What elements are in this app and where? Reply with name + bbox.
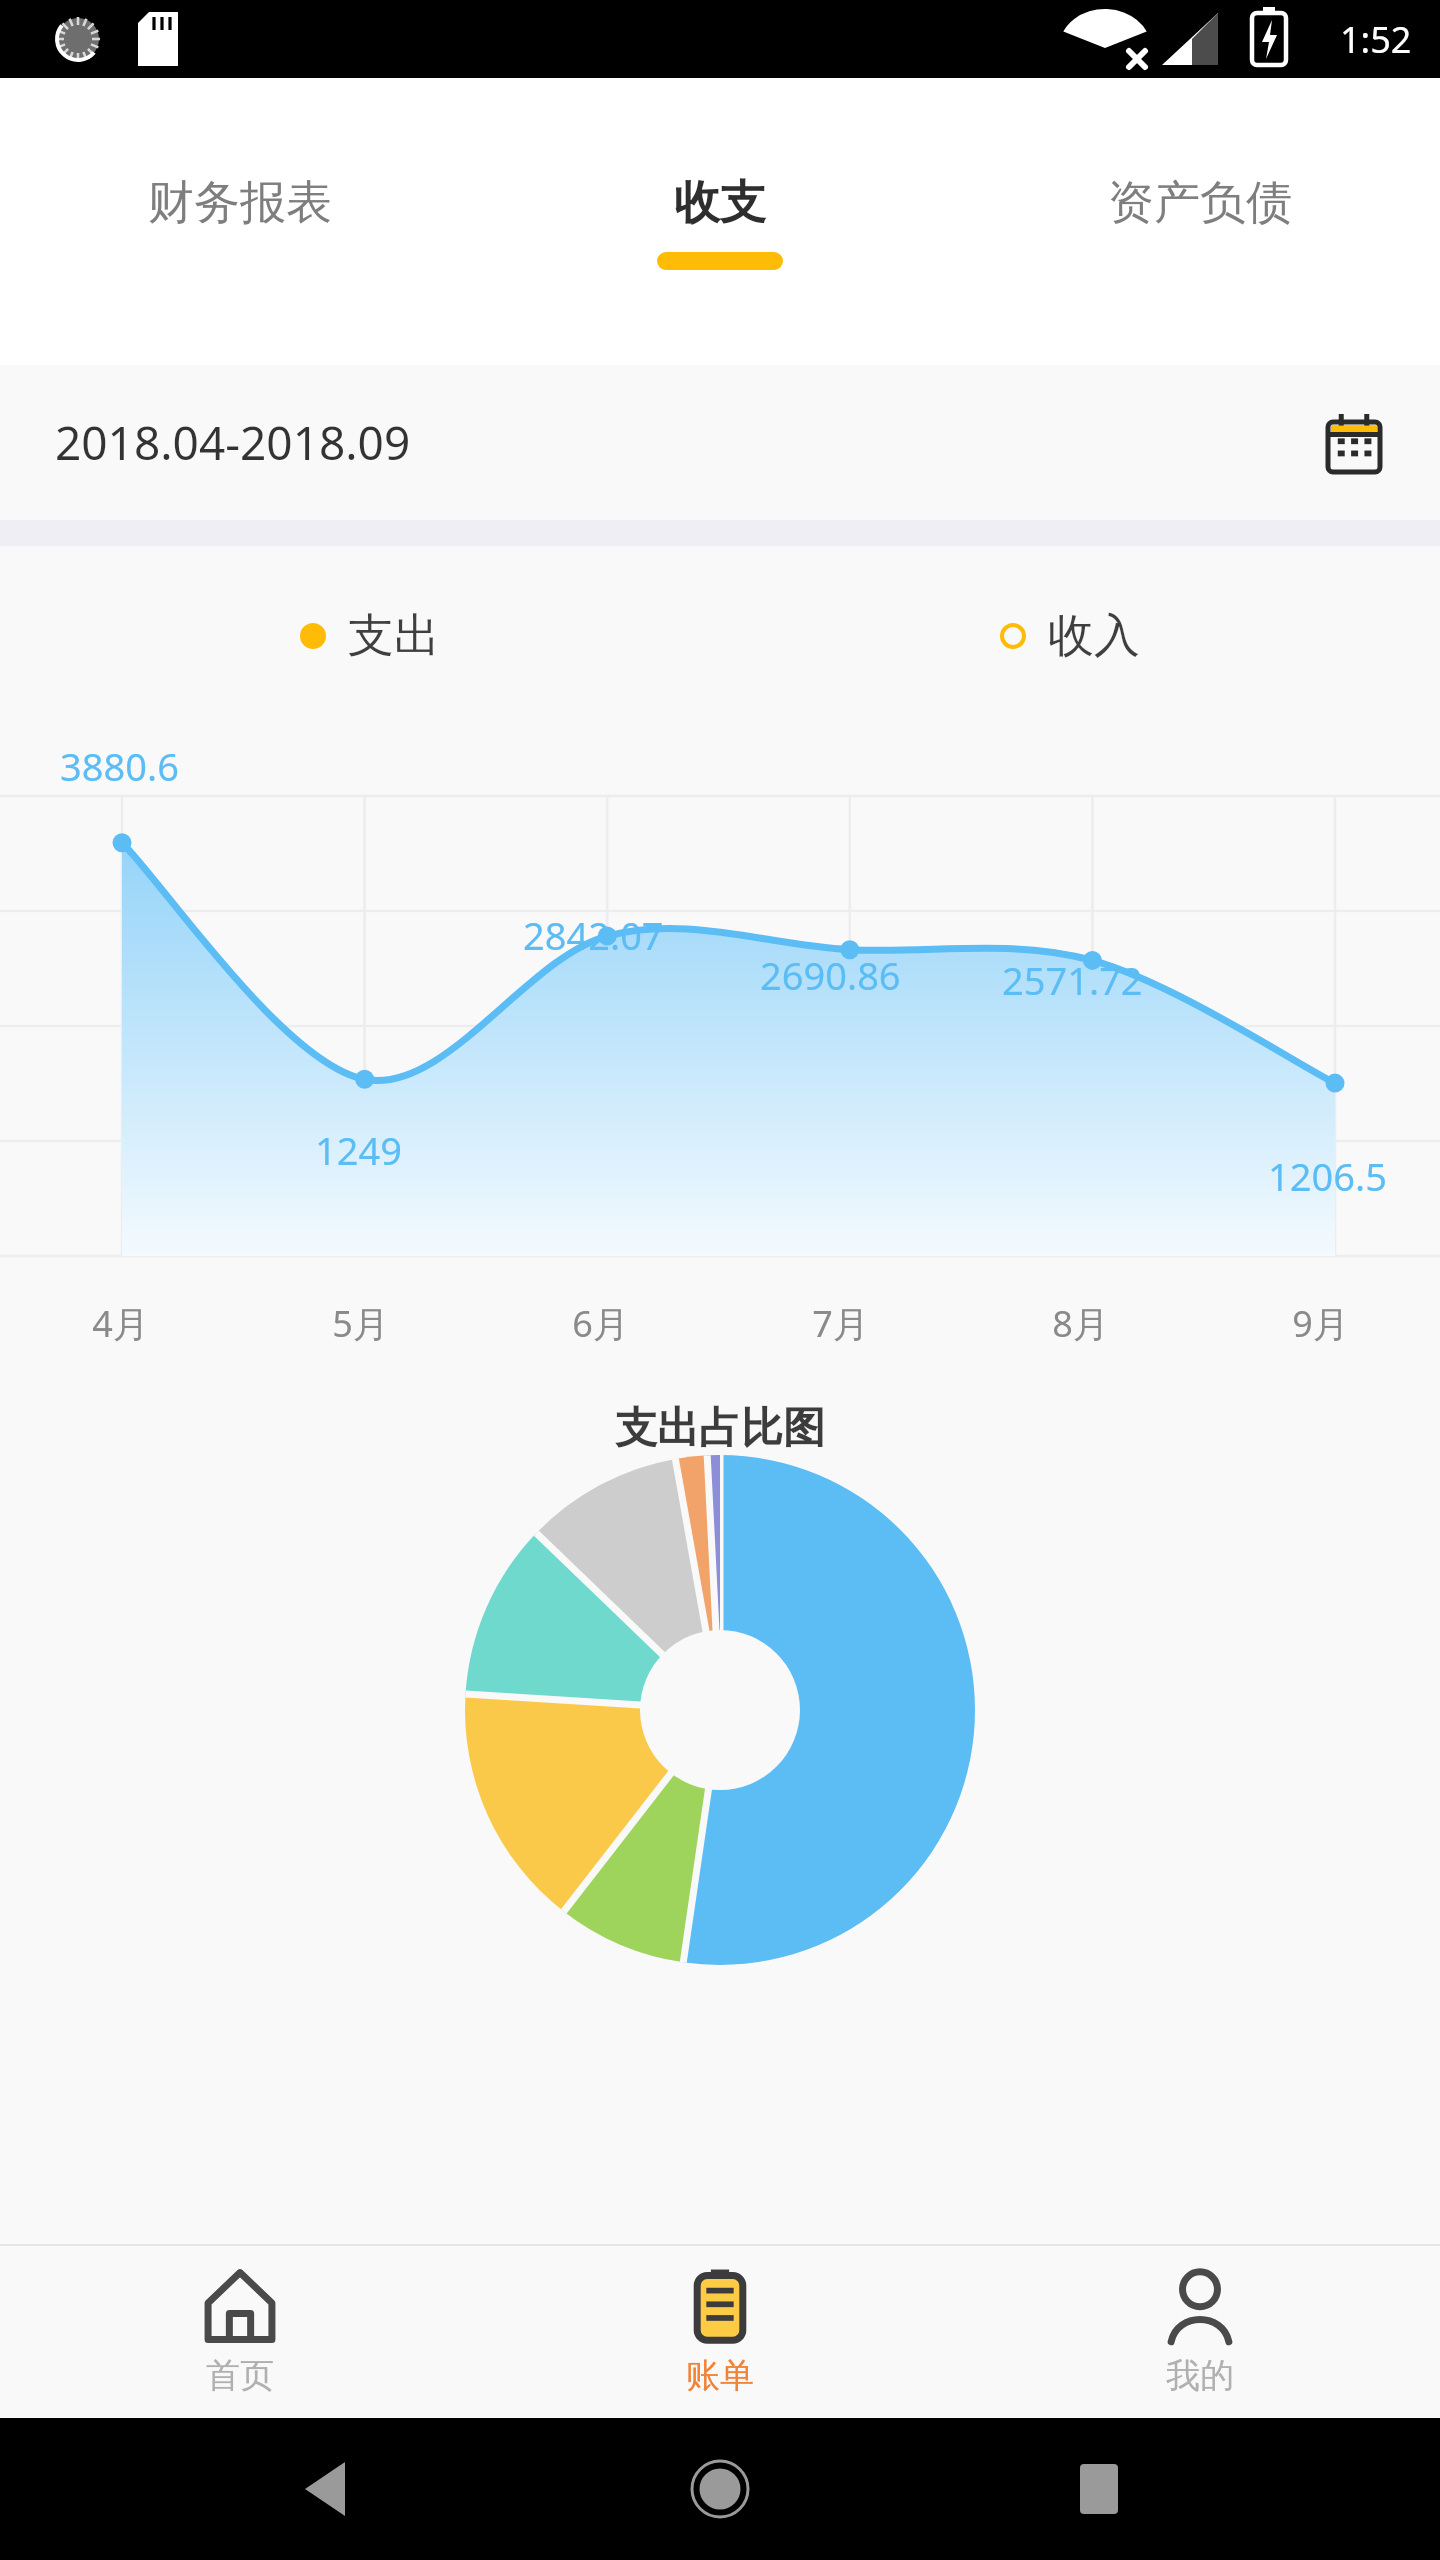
staticText: 2690.86 [760, 949, 901, 1001]
staticText: 4月 [92, 1299, 149, 1348]
staticText: 2571.72 [1002, 954, 1143, 1006]
staticText: 5月 [332, 1299, 389, 1348]
staticText: 2842.07 [523, 909, 664, 961]
staticText: 首页 [206, 2354, 274, 2397]
button[interactable]: 收入 [1000, 607, 1140, 665]
staticText: 1:52 [1340, 15, 1412, 64]
staticText: 收入 [1048, 607, 1140, 665]
staticText: 财务报表 [148, 174, 332, 232]
staticText: 9月 [1292, 1299, 1349, 1348]
staticText: 我的 [1166, 2354, 1234, 2397]
staticText: 账单 [686, 2354, 754, 2397]
button[interactable]: 财务报表 [0, 78, 480, 365]
button[interactable]: 首页 [0, 2246, 480, 2418]
button[interactable]: 我的 [960, 2246, 1440, 2418]
staticText: 7月 [812, 1299, 869, 1348]
staticText: 1249 [315, 1124, 402, 1176]
staticText: 6月 [572, 1299, 629, 1348]
button[interactable]: Pick date range [1316, 405, 1392, 481]
staticText: 2018.04-2018.09 [55, 411, 411, 474]
button[interactable]: 支出 [300, 607, 440, 665]
button[interactable]: 收支 [480, 78, 960, 365]
button[interactable]: 资产负债 [960, 78, 1440, 365]
staticText: 支出 [348, 607, 440, 665]
staticText: 支出占比图 [615, 1402, 825, 1455]
staticText: 3880.6 [60, 740, 179, 792]
staticText: 收支 [674, 174, 766, 232]
staticText: 8月 [1052, 1299, 1109, 1348]
staticText: 1206.5 [1268, 1150, 1387, 1202]
button[interactable]: 账单 [480, 2246, 960, 2418]
staticText: 资产负债 [1108, 174, 1292, 232]
